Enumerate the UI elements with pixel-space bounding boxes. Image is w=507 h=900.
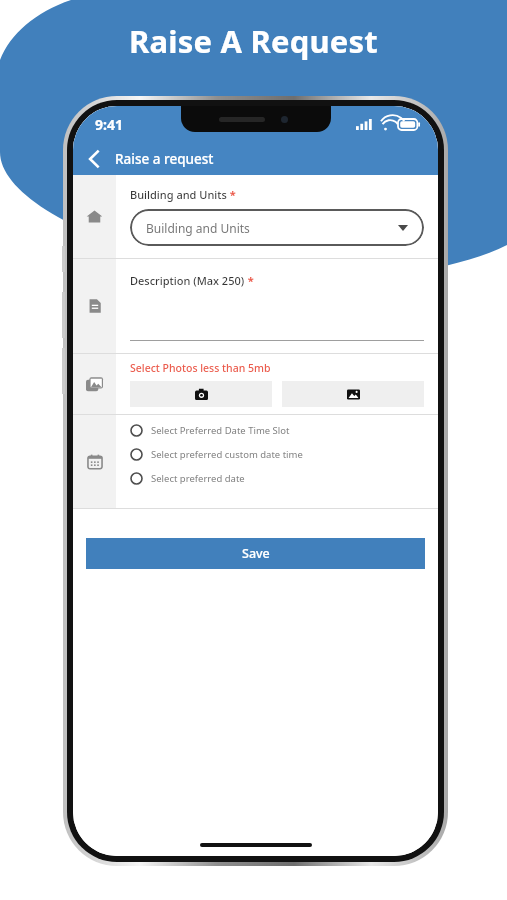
- staticText: 9:41: [95, 115, 123, 134]
- button[interactable]: Select preferred date: [130, 472, 438, 485]
- staticText: Select preferred custom date time: [151, 448, 303, 461]
- staticText: Description (Max 250): [130, 273, 245, 288]
- staticText: Building and Units: [146, 220, 398, 236]
- button[interactable]: Select preferred custom date time: [130, 448, 438, 461]
- staticText: *: [245, 273, 254, 288]
- button[interactable]: Building and Units: [130, 209, 424, 246]
- staticText: Raise a request: [115, 150, 214, 168]
- staticText: Raise A Request: [0, 20, 507, 62]
- button[interactable]: Save: [86, 538, 425, 569]
- button[interactable]: Back: [73, 142, 115, 175]
- button[interactable]: Select Preferred Date Time Slot: [130, 424, 438, 437]
- button[interactable]: Take photo: [130, 381, 272, 407]
- staticText: Save: [242, 545, 270, 562]
- button[interactable]: Choose image: [282, 381, 424, 407]
- staticText: Select Preferred Date Time Slot: [151, 424, 290, 437]
- staticText: *: [227, 187, 236, 202]
- staticText: Select Photos less than 5mb: [130, 361, 271, 375]
- button[interactable]: Back: [73, 142, 438, 175]
- staticText: Select preferred date: [151, 472, 245, 485]
- staticText: Building and Units: [130, 187, 227, 202]
